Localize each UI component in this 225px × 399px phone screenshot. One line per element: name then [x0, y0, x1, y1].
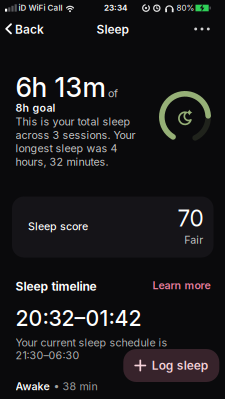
staticText: 23:34 — [104, 3, 127, 12]
staticText: • 38 min — [54, 380, 98, 393]
button[interactable]: Back — [4, 19, 48, 41]
button[interactable] — [188, 19, 216, 39]
staticText: longest sleep was 4 — [16, 142, 118, 155]
button[interactable]: Sleep score — [12, 196, 213, 257]
staticText: Log sleep — [152, 358, 208, 373]
staticText: 70 — [177, 205, 203, 232]
staticText: Learn more — [152, 279, 210, 292]
staticText: Back — [15, 22, 44, 37]
staticText: 21:30–06:30 — [16, 349, 80, 362]
staticText: 8h goal — [16, 101, 56, 114]
staticText: of — [108, 87, 118, 100]
staticText: hours, 32 minutes. — [16, 156, 109, 168]
staticText: Sleep — [96, 22, 128, 36]
staticText: Sleep score — [28, 220, 88, 233]
staticText: Fair — [184, 233, 203, 246]
staticText: across 3 sessions. Your — [16, 129, 136, 141]
staticText: Awake — [16, 380, 50, 393]
staticText: 80% — [176, 3, 194, 13]
staticText: Your current sleep schedule is — [16, 336, 168, 349]
button[interactable]: Log sleep — [123, 349, 219, 382]
button[interactable]: Learn more — [152, 279, 210, 292]
staticText: 6h 13m — [16, 72, 106, 103]
staticText: 20:32–01:42 — [15, 306, 141, 331]
staticText: iD WiFi Call — [18, 3, 62, 13]
staticText: Sleep timeline — [16, 279, 97, 293]
staticText: This is your total sleep — [16, 115, 131, 128]
